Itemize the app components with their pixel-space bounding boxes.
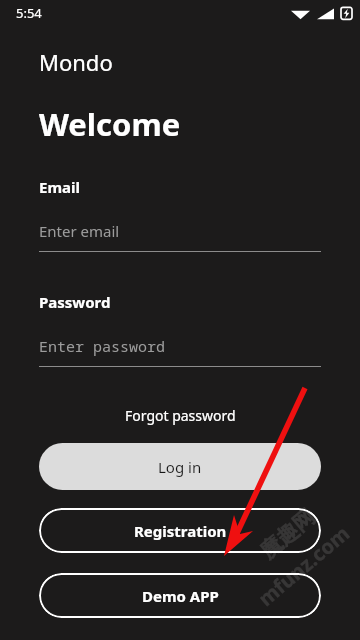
staticText: 魔趣网 xyxy=(255,504,320,564)
staticText: Email xyxy=(39,177,80,197)
staticText: Log in xyxy=(158,457,202,477)
staticText: Enter password xyxy=(39,336,166,356)
staticText: mfunz.com xyxy=(252,519,356,612)
staticText: Demo APP xyxy=(142,586,219,606)
staticText: Forgot password xyxy=(125,406,236,425)
staticText: Enter email xyxy=(39,221,120,241)
staticText: Registration xyxy=(134,521,227,541)
staticText: Password xyxy=(39,292,111,312)
button[interactable]: Demo APP xyxy=(39,573,321,618)
button[interactable]: Registration xyxy=(39,508,321,553)
staticText: Welcome xyxy=(39,103,181,145)
staticText: Mondo xyxy=(39,47,113,77)
button[interactable]: Log in xyxy=(39,443,321,490)
other: Status icons xyxy=(289,6,351,20)
staticText: 5:54 xyxy=(16,4,42,22)
button[interactable]: Enter password xyxy=(39,336,321,367)
button[interactable]: Enter email xyxy=(39,221,321,252)
button[interactable]: Forgot password xyxy=(0,402,360,429)
